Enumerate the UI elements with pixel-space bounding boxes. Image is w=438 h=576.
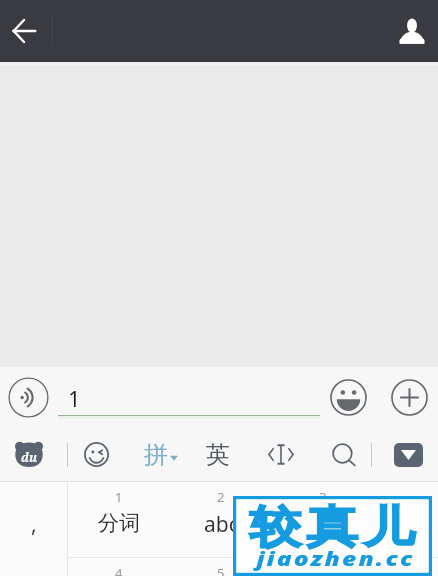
button[interactable]: 5 — [170, 558, 272, 576]
button[interactable]: 拼 — [136, 428, 186, 481]
staticText: 较真儿 — [217, 500, 438, 555]
staticText: 4 — [115, 564, 123, 576]
staticText: 5 — [217, 564, 225, 576]
button[interactable]: 英 — [196, 428, 239, 481]
button[interactable]: 3 — [272, 482, 374, 557]
button[interactable]: Account — [386, 0, 438, 62]
button[interactable]: Emoji — [329, 378, 368, 417]
staticText: abc — [204, 510, 239, 539]
staticText: 1 — [115, 488, 123, 506]
staticText: 2 — [217, 488, 225, 506]
staticText: 6 — [319, 564, 327, 576]
staticText: 英 — [206, 440, 230, 470]
button[interactable]: 2 — [170, 482, 272, 557]
button[interactable]: Cursor control — [259, 428, 303, 481]
button[interactable]: Baidu input — [9, 428, 49, 481]
button[interactable]: Hide keyboard — [382, 428, 435, 481]
button[interactable]: , — [0, 482, 67, 557]
staticText: 拼 — [144, 440, 168, 470]
button[interactable]: 4 — [68, 558, 170, 576]
staticText: du — [21, 449, 38, 465]
button[interactable]: Search — [323, 428, 365, 481]
button[interactable]: Add — [390, 378, 429, 417]
staticText: jiaozhen.cc — [206, 546, 438, 572]
button[interactable]: Emoticons — [76, 428, 116, 481]
staticText: , — [31, 510, 37, 539]
staticText: def — [307, 510, 339, 539]
button[interactable]: 1 — [68, 482, 170, 557]
staticText: 1 — [68, 383, 81, 413]
button[interactable]: Voice input — [8, 377, 49, 418]
staticText: 3 — [319, 488, 327, 506]
button[interactable]: 6 — [272, 558, 374, 576]
staticText: 分词 — [98, 510, 140, 536]
button[interactable]: Back — [0, 0, 47, 62]
